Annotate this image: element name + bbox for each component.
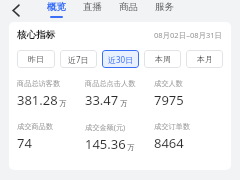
button[interactable]: 成交订单数 xyxy=(154,122,223,152)
staticText: 本周 xyxy=(155,54,171,64)
button[interactable]: 服务 xyxy=(155,1,174,16)
staticText: 商品 xyxy=(119,1,138,13)
button[interactable]: 本月 xyxy=(186,50,223,68)
button[interactable]: 成交商品数 xyxy=(17,122,85,152)
button[interactable]: 近30日 xyxy=(102,50,139,68)
button[interactable]: 直播 xyxy=(83,1,102,16)
staticText: 8464 xyxy=(154,134,184,152)
button[interactable]: Back xyxy=(6,2,24,20)
staticText: 万 xyxy=(59,99,67,108)
button[interactable]: 概览 xyxy=(47,1,66,18)
button[interactable]: 本周 xyxy=(144,50,181,68)
button[interactable]: 成交人数 xyxy=(154,79,223,109)
staticText: 直播 xyxy=(83,1,102,13)
button[interactable]: 昨日 xyxy=(17,50,55,68)
staticText: 核心指标 xyxy=(17,29,55,41)
staticText: 概览 xyxy=(47,1,66,13)
staticText: 昨日 xyxy=(28,54,44,64)
staticText: 商品总点击人数 xyxy=(85,79,136,88)
button[interactable]: 成交金额(元) xyxy=(85,122,154,153)
staticText: 万 xyxy=(120,99,128,108)
staticText: 381.28 xyxy=(17,91,58,109)
staticText: 74 xyxy=(17,134,32,152)
staticText: 145.36 xyxy=(85,135,126,153)
staticText: 本月 xyxy=(197,54,213,64)
staticText: 近30日 xyxy=(108,54,134,65)
staticText: 08月02日–08月31日 xyxy=(154,30,223,40)
staticText: 服务 xyxy=(155,1,174,13)
button[interactable]: 商品总点击人数 xyxy=(85,79,154,109)
staticText: 成交人数 xyxy=(154,79,183,88)
staticText: 成交订单数 xyxy=(154,122,190,131)
staticText: 成交商品数 xyxy=(17,122,53,131)
staticText: 万 xyxy=(127,143,135,152)
staticText: 成交金额(元) xyxy=(85,122,126,132)
staticText: 商品总访客数 xyxy=(17,79,61,88)
staticText: 33.47 xyxy=(85,91,119,109)
staticText: 近7日 xyxy=(68,54,89,65)
button[interactable]: 商品总访客数 xyxy=(17,79,85,109)
button[interactable]: 近7日 xyxy=(60,50,97,68)
button[interactable]: 商品 xyxy=(119,1,138,16)
staticText: 7975 xyxy=(154,91,184,109)
